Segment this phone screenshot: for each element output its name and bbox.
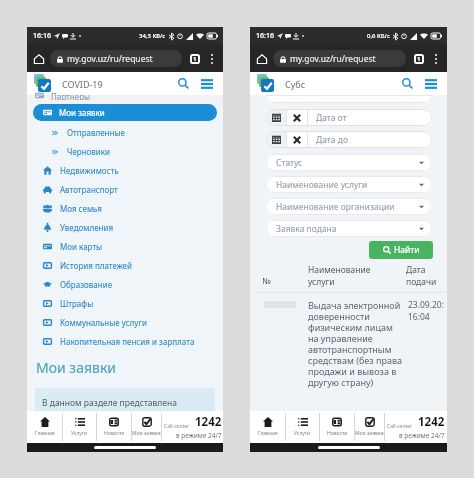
button[interactable]: Образование (27, 275, 223, 294)
staticText: Наименование организации (276, 201, 395, 213)
button[interactable]: Logo (34, 74, 53, 93)
button[interactable]: Мои заявки (33, 104, 217, 121)
button[interactable]: Уведомления (27, 218, 223, 237)
button[interactable]: Заявка подана (266, 220, 432, 237)
staticText: Наименование услуги (276, 179, 368, 191)
staticText: Главная (35, 430, 55, 437)
staticText: Дата от (316, 112, 347, 124)
staticText: Call-center (387, 423, 413, 430)
button[interactable]: Search (398, 74, 417, 93)
staticText: Штрафы (60, 298, 94, 309)
staticText: 0,6 KБ/c (367, 32, 390, 40)
button[interactable]: my.gov.uz/ru/request (50, 50, 182, 67)
button[interactable]: Новости (320, 411, 354, 443)
staticText: Мои заявки (59, 107, 105, 118)
button[interactable]: История платежей (27, 256, 223, 275)
button[interactable]: Статус (266, 154, 432, 171)
button[interactable]: Menu (421, 74, 440, 93)
button[interactable]: Мои заявки (132, 411, 161, 443)
staticText: Мои заявки (36, 358, 117, 377)
button[interactable]: Наименование организации (266, 198, 432, 215)
button[interactable]: Главная (250, 411, 285, 443)
staticText: Уведомления (60, 222, 114, 233)
staticText: История платежей (60, 260, 132, 271)
staticText: 1 (417, 55, 421, 63)
button[interactable]: my.gov.uz/ru/request (273, 50, 406, 67)
button[interactable]: Коммунальные услуги (27, 313, 223, 332)
button[interactable]: Дата до (266, 131, 432, 148)
staticText: № (262, 275, 271, 287)
staticText: Дата до (316, 134, 348, 146)
staticText: Накопительная пенсия и зарплата (60, 336, 195, 347)
staticText: Мои заявки (132, 430, 161, 437)
button[interactable]: Накопительная пенсия и зарплата (27, 332, 223, 351)
staticText: Выдача электронной доверенности физическ… (308, 299, 402, 388)
staticText: В данном разделе представлена (42, 397, 177, 409)
staticText: 16:16 (33, 31, 51, 41)
staticText: Автотранспорт (60, 184, 118, 195)
button[interactable]: Дата от (266, 109, 432, 126)
button[interactable]: Услуги (63, 411, 96, 443)
staticText: Отправленные (67, 127, 125, 138)
staticText: 23.09.20: 16:04 (408, 299, 444, 323)
button[interactable]: Моя семья (27, 199, 223, 218)
button[interactable]: Услуги (286, 411, 319, 443)
button[interactable]: Главная (27, 411, 62, 443)
staticText: Call-center (164, 423, 190, 430)
button[interactable]: Home (32, 52, 46, 66)
staticText: Черновики (67, 146, 111, 157)
staticText: Статус (276, 157, 303, 169)
staticText: Наименование услуги (308, 264, 374, 288)
button[interactable]: Штрафы (27, 294, 223, 313)
staticText: Заявка подана (276, 223, 337, 235)
staticText: 1242 (418, 414, 445, 430)
button[interactable]: More options (430, 53, 442, 65)
staticText: COVID-19 (62, 78, 103, 90)
staticText: в режиме 24/7 (176, 431, 222, 440)
staticText: Новости (104, 430, 125, 437)
button[interactable]: Home (255, 52, 269, 66)
button[interactable]: Новости (97, 411, 131, 443)
staticText: Услуги (294, 430, 311, 437)
staticText: Недвижимость (60, 165, 119, 176)
staticText: 16:16 (256, 31, 274, 41)
button[interactable]: Menu (197, 74, 216, 93)
button[interactable]: Наименование услуги (266, 176, 432, 193)
button[interactable]: Автотранспорт (27, 180, 223, 199)
button[interactable]: Черновики (27, 142, 223, 161)
staticText: в режиме 24/7 (399, 431, 445, 440)
staticText: Мои заявки (355, 430, 384, 437)
button[interactable]: Call-center (385, 411, 447, 443)
staticText: Партнеры (51, 91, 91, 100)
staticText: Образование (60, 279, 113, 290)
button[interactable]: Call-center (162, 411, 223, 443)
staticText: Коммунальные услуги (60, 317, 147, 328)
staticText: my.gov.uz/ru/request (290, 53, 376, 65)
button[interactable]: Мои карты (27, 237, 223, 256)
staticText: Услуги (71, 430, 88, 437)
button[interactable]: Недвижимость (27, 161, 223, 180)
staticText: 1242 (195, 414, 222, 430)
staticText: my.gov.uz/ru/request (67, 53, 153, 65)
staticText: Дата подачи (406, 264, 440, 288)
button[interactable]: Tabs (188, 52, 202, 66)
button[interactable]: Tabs (412, 52, 426, 66)
staticText: 34,5 KБ/c (139, 32, 166, 40)
button[interactable]: Отправленные (27, 123, 223, 142)
button[interactable]: Найти (369, 241, 433, 259)
staticText: Субс (285, 78, 306, 90)
staticText: Найти (394, 244, 420, 256)
button[interactable]: Logo (257, 74, 276, 93)
staticText: Новости (327, 430, 348, 437)
staticText: Мои карты (60, 241, 103, 252)
button[interactable]: Search (174, 74, 193, 93)
staticText: Главная (258, 430, 278, 437)
button[interactable]: More options (206, 53, 218, 65)
button[interactable]: Мои заявки (355, 411, 384, 443)
staticText: Моя семья (60, 203, 102, 214)
staticText: 1 (193, 55, 197, 63)
